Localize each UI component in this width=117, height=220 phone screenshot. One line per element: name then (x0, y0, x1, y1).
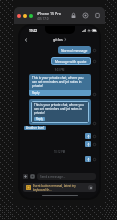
button[interactable]: Send a message... (37, 173, 96, 180)
button[interactable]: Maximize (29, 14, 33, 18)
button[interactable]: Back (22, 36, 30, 44)
button[interactable]: Message options (93, 60, 96, 63)
staticText: Another level (26, 126, 44, 130)
button[interactable]: More options (94, 12, 101, 19)
staticText: 9:03 PM (23, 68, 96, 72)
button[interactable]: Message options (93, 122, 96, 125)
button[interactable]: Another level (24, 126, 46, 130)
button[interactable]: Close (17, 14, 21, 18)
staticText: 10:12 PM (23, 150, 96, 154)
staticText: Event button removal, latest try keyboar… (33, 184, 88, 192)
button[interactable]: Message options (93, 135, 96, 138)
button[interactable] (85, 156, 91, 162)
button[interactable]: Message options (93, 49, 96, 52)
staticText: Reply (36, 117, 43, 121)
button[interactable]: Reply (34, 117, 45, 121)
button[interactable]: Normal message (58, 46, 91, 54)
button[interactable]: Event button removal, latest try keyboar… (23, 183, 96, 192)
button[interactable]: This is your private chat, where you can… (29, 99, 91, 125)
staticText: gitlos (53, 37, 63, 42)
staticText: Send a message... (40, 175, 66, 179)
button[interactable]: Message options (93, 158, 96, 161)
staticText: iOS 17.0 (37, 17, 49, 21)
button[interactable]: Message options (93, 143, 96, 146)
staticText: Normal message (61, 48, 88, 52)
staticText: Reply (32, 91, 40, 95)
staticText: Message with quote (55, 59, 87, 63)
button[interactable]: gitlos (53, 37, 67, 42)
staticText: 19:22 (29, 29, 38, 33)
staticText: This is your private chat, where you can… (32, 76, 88, 88)
button[interactable]: This is your private chat, where you can… (29, 74, 91, 96)
button[interactable]: Attach (23, 174, 28, 179)
button[interactable]: Minimize (23, 14, 27, 18)
button[interactable]: Lock (70, 12, 77, 19)
button[interactable]: Screenshot (82, 12, 89, 19)
button[interactable]: Camera (30, 174, 35, 179)
button[interactable] (85, 141, 91, 147)
button[interactable]: Reply (29, 90, 91, 96)
button[interactable] (85, 133, 91, 139)
staticText: iPhone 15 Pro (37, 11, 62, 16)
button[interactable]: Message options (93, 93, 96, 96)
button[interactable]: Dismiss (88, 185, 93, 190)
button[interactable]: Message with quote (51, 57, 91, 65)
staticText: This is your private chat, where you can… (34, 103, 86, 115)
